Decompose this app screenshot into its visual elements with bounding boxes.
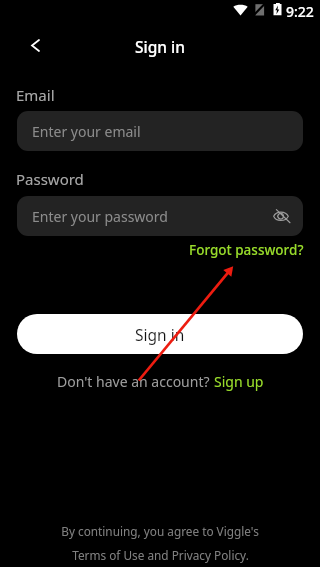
button[interactable]: Enter your email: [17, 111, 303, 151]
staticText: By continuing, you agree to Viggle's: [61, 523, 259, 539]
staticText: Enter your password: [32, 207, 168, 226]
staticText: Email: [16, 85, 55, 105]
staticText: Password: [16, 169, 84, 189]
button[interactable]: Sign in: [17, 314, 303, 354]
button[interactable]: Enter your password: [17, 196, 303, 236]
staticText: Don't have an account?: [57, 372, 214, 391]
button[interactable]: Show password: [269, 204, 293, 228]
staticText: Enter your email: [32, 122, 141, 141]
staticText: Sign in: [0, 36, 320, 57]
staticText: Terms of Use and Privacy Policy.: [72, 547, 249, 563]
button[interactable]: Back: [17, 27, 53, 63]
button[interactable]: Sign up: [214, 372, 264, 391]
staticText: Forgot password?: [189, 241, 304, 259]
staticText: Sign up: [214, 372, 264, 391]
staticText: 9:22: [286, 2, 314, 21]
button[interactable]: Forgot password?: [185, 238, 308, 262]
staticText: Sign in: [135, 324, 185, 345]
